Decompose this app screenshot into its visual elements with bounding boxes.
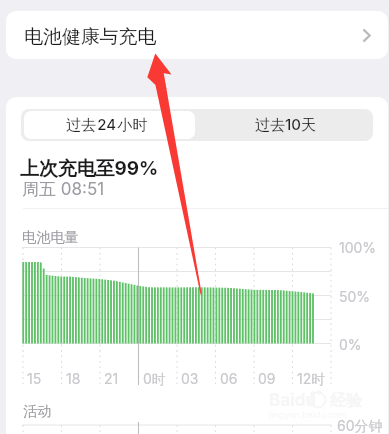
staticText: 12时 [297,370,326,388]
staticText: 活动 [23,402,52,420]
staticText: 60分钟 [337,417,383,434]
staticText: 15 [27,370,42,387]
staticText: 100% [339,239,377,256]
other: 电池健康与充电 [363,29,371,42]
button[interactable]: 过去10天 [197,111,370,139]
staticText: 过去 24 小时 [66,115,148,134]
staticText: 18 [66,370,81,387]
staticText: 0% [339,336,362,353]
staticText: 电池电量 [22,228,79,246]
staticText: 50% [339,288,371,305]
staticText: 上次充电至99% [20,157,159,181]
button[interactable]: 过去 24 小时 [24,111,195,139]
staticText: 06 [220,370,238,387]
staticText: 经验 [330,391,362,411]
staticText: 过去10天 [255,115,316,134]
staticText: 09 [258,370,276,387]
button[interactable]: 电池健康与充电 [6,11,388,59]
staticText: 0时 [143,370,166,388]
staticText: 03 [181,370,199,387]
staticText: 21 [104,370,119,387]
staticText: Baidu [269,390,317,411]
staticText: 电池健康与充电 [24,25,157,49]
staticText: 周五 08:51 [22,179,105,201]
